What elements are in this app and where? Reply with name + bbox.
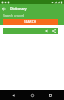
button[interactable]: Home (28, 91, 37, 100)
staticText: Dictionary (10, 6, 27, 11)
button[interactable]: Search a word (3, 13, 61, 19)
staticText: SEARCH (24, 20, 37, 24)
button[interactable]: Share (51, 28, 57, 34)
staticText: Search a word (3, 14, 25, 18)
button[interactable]: Recent apps (46, 91, 55, 100)
button[interactable]: SEARCH (3, 19, 58, 25)
button[interactable]: Back (9, 91, 18, 100)
button[interactable]: Pronounce (44, 28, 50, 34)
button[interactable]: Navigate up (0, 5, 8, 13)
